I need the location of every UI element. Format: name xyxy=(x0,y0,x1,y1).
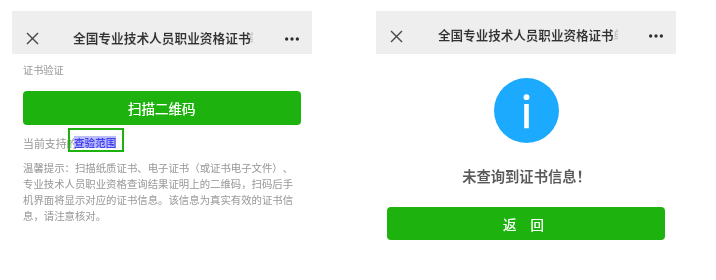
staticText: 当前支持的 xyxy=(23,135,78,151)
staticText: 返 回 xyxy=(503,214,550,234)
staticText: 单 xyxy=(613,25,618,43)
staticText: 证书验证 xyxy=(23,62,64,77)
staticText: 全国专业技术人员职业资格证书 xyxy=(438,25,614,43)
button[interactable]: Close xyxy=(382,22,410,50)
button[interactable]: 返 回 xyxy=(387,207,665,240)
button[interactable]: 扫描二维码 xyxy=(23,91,301,125)
button[interactable]: Information xyxy=(494,78,559,143)
staticText: 全国专业技术人员职业资格证书 xyxy=(73,28,251,46)
staticText: 未查询到证书信息！ xyxy=(462,165,591,186)
button[interactable] xyxy=(68,128,124,152)
staticText: 单 xyxy=(248,28,253,46)
staticText: 扫描二维码 xyxy=(128,98,196,118)
staticText: 查验范围 xyxy=(74,135,117,150)
button[interactable]: More options xyxy=(278,25,306,53)
button[interactable]: Close xyxy=(18,24,46,52)
staticText: 温馨提示：扫描纸质证书、电子证书（或证书电子文件）、专业技术人员职业资格查询结果… xyxy=(23,160,301,223)
button[interactable]: More options xyxy=(642,22,670,50)
